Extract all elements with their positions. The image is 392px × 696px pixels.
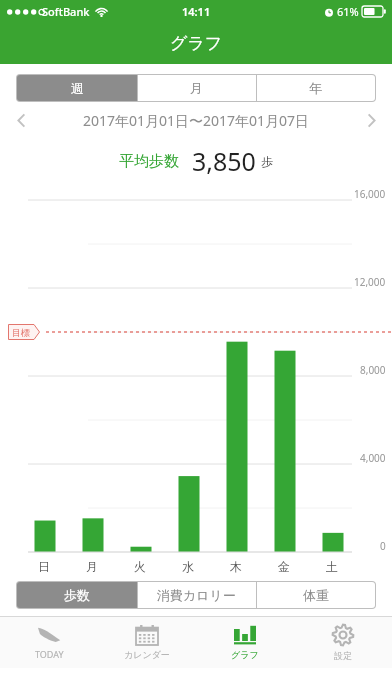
staticText: 週 bbox=[71, 80, 84, 96]
staticText: SoftBank bbox=[42, 4, 90, 19]
staticText: 2017年01月01日〜2017年01月07日 bbox=[42, 111, 350, 130]
staticText: 目標 bbox=[12, 327, 30, 338]
staticText: 木 bbox=[230, 559, 242, 574]
staticText: 歩 bbox=[261, 154, 273, 169]
staticText: 14:11 bbox=[182, 4, 211, 19]
button[interactable]: Previous period bbox=[0, 102, 42, 138]
staticText: 金 bbox=[278, 559, 290, 574]
staticText: グラフ bbox=[170, 33, 223, 54]
staticText: 4,000 bbox=[360, 451, 386, 465]
staticText: 8,000 bbox=[360, 363, 386, 377]
staticText: 年 bbox=[309, 80, 322, 96]
button[interactable]: TODAY bbox=[0, 617, 98, 668]
staticText: TODAY bbox=[35, 648, 64, 660]
staticText: 月 bbox=[86, 559, 98, 574]
staticText: 12,000 bbox=[354, 275, 386, 289]
button[interactable]: 月 bbox=[137, 75, 256, 101]
button[interactable]: 年 bbox=[256, 75, 375, 101]
button[interactable]: 設定 bbox=[294, 617, 392, 668]
button[interactable]: 体重 bbox=[256, 582, 375, 608]
staticText: 月 bbox=[190, 80, 203, 96]
staticText: 消費カロリー bbox=[157, 587, 236, 603]
staticText: グラフ bbox=[231, 649, 259, 660]
button[interactable]: Next period bbox=[350, 102, 392, 138]
button[interactable]: カレンダー bbox=[98, 617, 196, 668]
staticText: 水 bbox=[182, 559, 194, 574]
staticText: 歩数 bbox=[64, 587, 90, 603]
staticText: 0 bbox=[380, 539, 386, 553]
staticText: 16,000 bbox=[354, 187, 386, 201]
staticText: 61% bbox=[337, 4, 359, 19]
staticText: カレンダー bbox=[124, 649, 170, 660]
button[interactable]: 週 bbox=[17, 75, 137, 101]
staticText: 平均歩数 bbox=[119, 152, 179, 171]
staticText: 日 bbox=[38, 559, 50, 574]
staticText: 土 bbox=[326, 559, 338, 574]
staticText: 設定 bbox=[334, 650, 352, 661]
staticText: 体重 bbox=[303, 587, 329, 603]
button[interactable]: 消費カロリー bbox=[137, 582, 256, 608]
staticText: 3,850 bbox=[192, 144, 256, 178]
staticText: 火 bbox=[134, 559, 146, 574]
button[interactable]: グラフ bbox=[196, 617, 294, 668]
button[interactable]: 歩数 bbox=[17, 582, 137, 608]
